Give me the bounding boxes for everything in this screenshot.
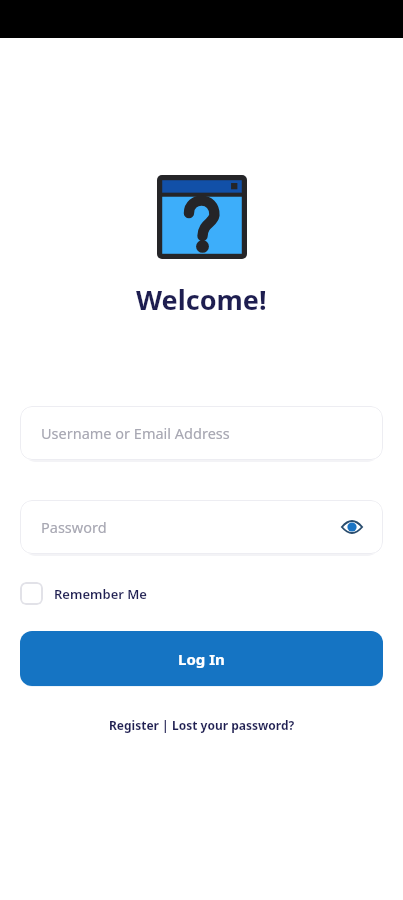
- button[interactable]: Remember Me: [20, 582, 383, 605]
- button[interactable]: Register: [109, 717, 159, 733]
- staticText: Username or Email Address: [41, 423, 365, 443]
- button[interactable]: Show password: [339, 514, 365, 540]
- staticText: |: [159, 717, 172, 733]
- staticText: Remember Me: [54, 585, 147, 603]
- button[interactable]: Lost your password?: [172, 717, 295, 733]
- staticText: Password: [41, 517, 339, 537]
- staticText: Log In: [178, 649, 225, 669]
- staticText: Welcome!: [136, 281, 267, 318]
- button[interactable]: Password: [20, 500, 383, 554]
- button[interactable]: Log In: [20, 631, 383, 686]
- button[interactable]: Username or Email Address: [20, 406, 383, 460]
